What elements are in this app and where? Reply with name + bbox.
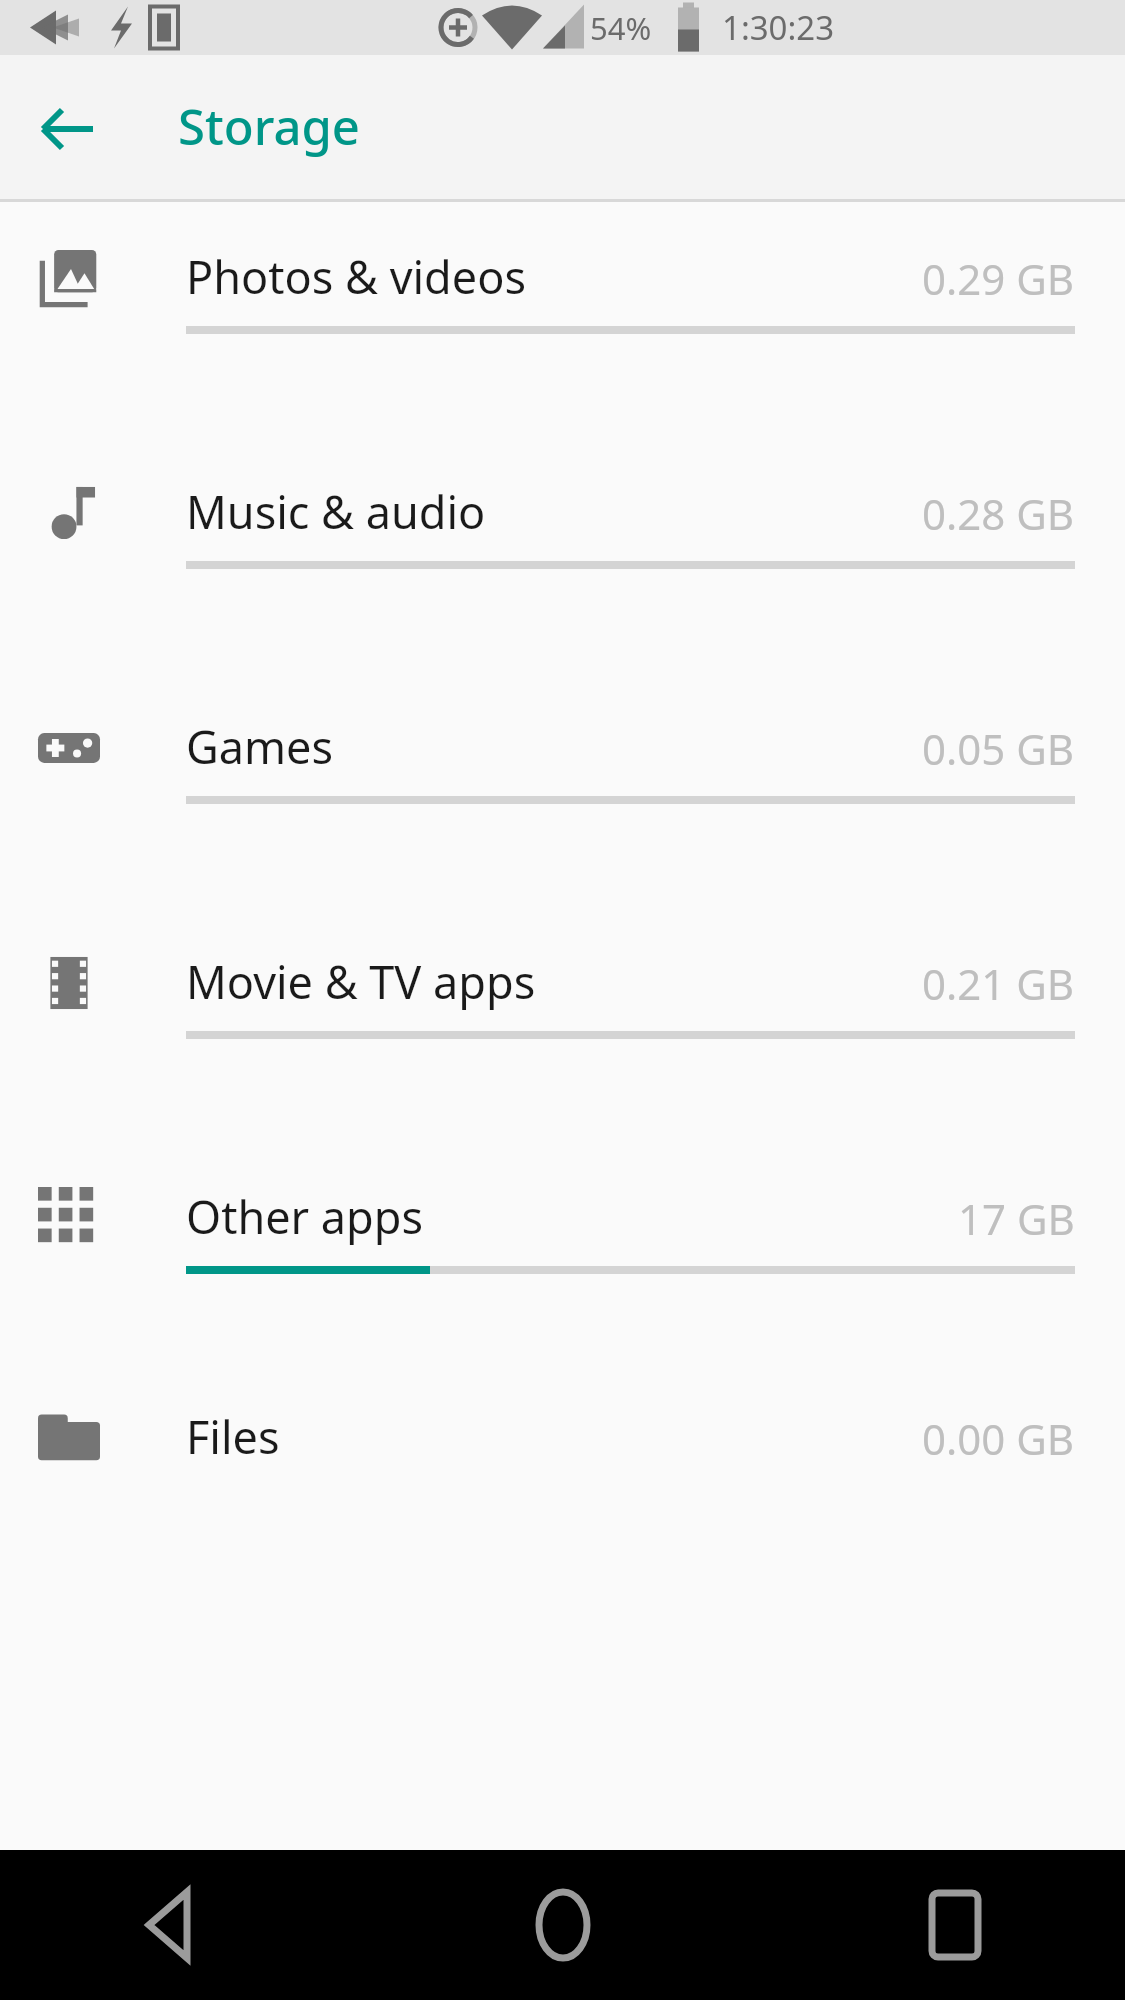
staticText: 0.29 GB <box>922 250 1075 307</box>
staticText: Music & audio <box>186 481 486 542</box>
staticText: 17 GB <box>958 1190 1075 1247</box>
staticText: Storage <box>178 93 360 160</box>
button[interactable]: Home <box>503 1865 623 1985</box>
button[interactable]: Recent apps <box>895 1865 1015 1985</box>
staticText: Games <box>186 716 334 777</box>
button[interactable]: Other apps <box>0 1142 1125 1377</box>
staticText: Other apps <box>186 1186 424 1247</box>
staticText: 0.21 GB <box>922 955 1075 1012</box>
staticText: 0.05 GB <box>922 720 1075 777</box>
button[interactable]: Files <box>0 1377 1125 1497</box>
button[interactable]: Back <box>110 1865 230 1985</box>
button[interactable]: Music & audio <box>0 437 1125 672</box>
staticText: 0.28 GB <box>922 485 1075 542</box>
staticText: 1:30:23 <box>722 5 835 50</box>
staticText: Photos & videos <box>186 246 526 307</box>
button[interactable]: Movie & TV apps <box>0 907 1125 1142</box>
staticText: Movie & TV apps <box>186 951 536 1012</box>
staticText: Files <box>186 1406 280 1467</box>
button[interactable]: Back <box>20 81 116 177</box>
staticText: 0.00 GB <box>922 1410 1075 1467</box>
button[interactable]: Photos & videos <box>0 202 1125 437</box>
staticText: 54% <box>590 7 652 49</box>
button[interactable]: Games <box>0 672 1125 907</box>
